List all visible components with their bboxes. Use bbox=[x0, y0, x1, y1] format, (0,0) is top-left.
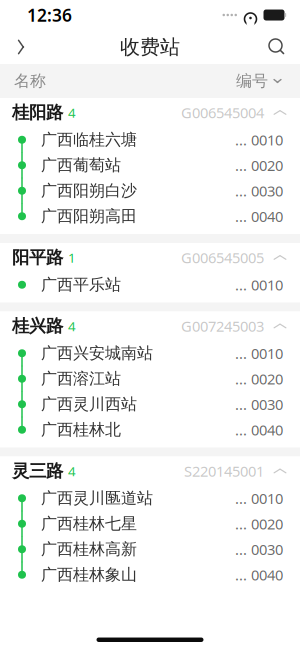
staticText: 广西阳朔白沙 bbox=[41, 181, 137, 201]
staticText: 4 bbox=[68, 462, 76, 480]
button[interactable]: 广西葡萄站 bbox=[0, 152, 300, 178]
staticText: 广西灵川匦道站 bbox=[41, 488, 153, 508]
staticText: ... 0030 bbox=[235, 394, 283, 414]
button[interactable]: 广西灵川匦道站 bbox=[0, 485, 300, 511]
staticText: ... 0010 bbox=[235, 130, 283, 149]
staticText: 广西兴安城南站 bbox=[41, 343, 153, 363]
staticText: 广西葡萄站 bbox=[41, 155, 121, 175]
staticText: 桂阳路 bbox=[12, 102, 63, 123]
staticText: 广西桂林象山 bbox=[41, 565, 137, 585]
staticText: 广西阳朔高田 bbox=[41, 206, 137, 226]
staticText: ... 0020 bbox=[235, 514, 283, 533]
button[interactable]: 广西桂林北 bbox=[0, 417, 300, 442]
staticText: ... 0030 bbox=[235, 539, 283, 559]
button[interactable]: 广西桂林七星 bbox=[0, 511, 300, 536]
staticText: 广西桂林七星 bbox=[41, 514, 137, 534]
button[interactable]: 广西阳朔白沙 bbox=[0, 178, 300, 203]
staticText: ... 0040 bbox=[235, 420, 283, 439]
button[interactable]: 广西灵川西站 bbox=[0, 391, 300, 417]
staticText: ... 0040 bbox=[235, 565, 283, 584]
button[interactable]: 广西平乐站 bbox=[0, 272, 300, 297]
button[interactable]: 桂兴路 bbox=[0, 311, 300, 340]
button[interactable]: 广西阳朔高田 bbox=[0, 203, 300, 229]
staticText: ... 0030 bbox=[235, 181, 283, 200]
staticText: S220145001 bbox=[184, 461, 264, 481]
staticText: G006545005 bbox=[181, 248, 264, 267]
staticText: ... 0010 bbox=[235, 275, 283, 294]
staticText: ... 0020 bbox=[235, 155, 283, 175]
staticText: 12:36 bbox=[27, 3, 72, 26]
staticText: G007245003 bbox=[181, 316, 264, 336]
button[interactable]: 广西兴安城南站 bbox=[0, 340, 300, 366]
staticText: 收费站 bbox=[120, 35, 180, 59]
button[interactable]: 广西桂林高新 bbox=[0, 536, 300, 562]
button[interactable]: 灵三路 bbox=[0, 456, 300, 485]
staticText: 广西桂林高新 bbox=[41, 539, 137, 559]
staticText: ... 0020 bbox=[235, 369, 283, 388]
button[interactable]: 广西溶江站 bbox=[0, 366, 300, 391]
staticText: 1 bbox=[68, 249, 76, 266]
button[interactable]: 广西临桂六塘 bbox=[0, 127, 300, 152]
staticText: 编号 bbox=[236, 71, 268, 91]
staticText: 广西桂林北 bbox=[41, 420, 121, 440]
staticText: 广西溶江站 bbox=[41, 369, 121, 389]
staticText: 灵三路 bbox=[12, 460, 63, 482]
staticText: 广西临桂六塘 bbox=[41, 130, 137, 150]
button[interactable]: 桂阳路 bbox=[0, 98, 300, 127]
button[interactable]: 搜索 bbox=[262, 32, 292, 62]
staticText: 4 bbox=[68, 317, 76, 335]
staticText: ... 0010 bbox=[235, 343, 283, 363]
button[interactable]: 返回 bbox=[6, 32, 36, 62]
staticText: 广西平乐站 bbox=[41, 275, 121, 295]
staticText: 4 bbox=[68, 104, 76, 121]
button[interactable]: 名称 bbox=[10, 63, 50, 99]
staticText: G006545004 bbox=[181, 103, 264, 122]
staticText: 阳平路 bbox=[12, 247, 63, 268]
staticText: 桂兴路 bbox=[12, 315, 63, 337]
button[interactable]: 广西桂林象山 bbox=[0, 562, 300, 587]
button[interactable]: 阳平路 bbox=[0, 243, 300, 272]
staticText: ... 0040 bbox=[235, 206, 283, 226]
staticText: 名称 bbox=[14, 71, 46, 91]
button[interactable]: 编号 bbox=[232, 63, 286, 99]
staticText: ... 0010 bbox=[235, 488, 283, 508]
staticText: 广西灵川西站 bbox=[41, 394, 137, 414]
